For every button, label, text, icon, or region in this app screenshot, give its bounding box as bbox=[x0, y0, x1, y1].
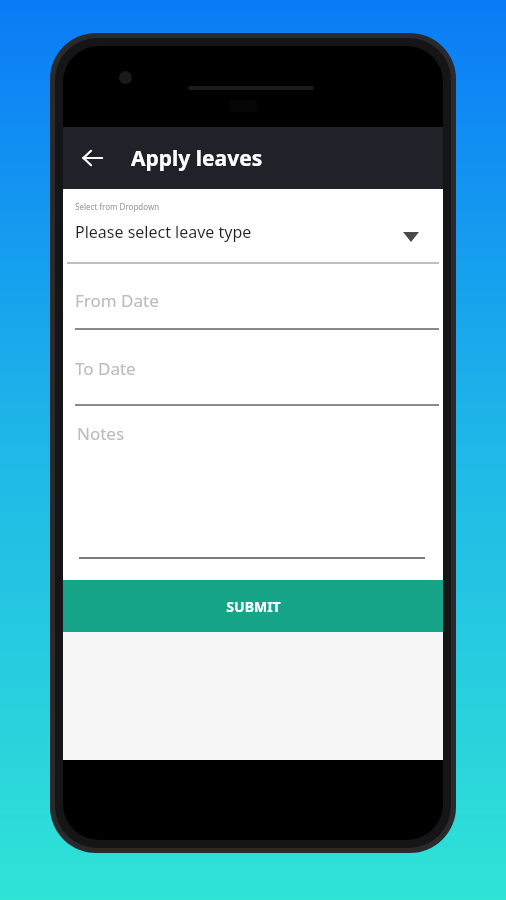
staticText: To Date bbox=[75, 357, 136, 380]
button[interactable]: Select from Dropdown bbox=[63, 189, 443, 264]
button[interactable]: Notes bbox=[63, 406, 443, 580]
staticText: Select from Dropdown bbox=[75, 201, 160, 212]
staticText: Please select leave type bbox=[75, 221, 252, 243]
button[interactable]: SUBMIT bbox=[63, 580, 443, 632]
button[interactable]: From Date bbox=[63, 264, 443, 330]
staticText: Apply leaves bbox=[131, 144, 263, 173]
staticText: From Date bbox=[75, 289, 159, 312]
button[interactable]: To Date bbox=[63, 330, 443, 406]
button[interactable]: Back bbox=[69, 134, 117, 182]
staticText: Notes bbox=[77, 422, 125, 445]
staticText: SUBMIT bbox=[226, 597, 281, 616]
